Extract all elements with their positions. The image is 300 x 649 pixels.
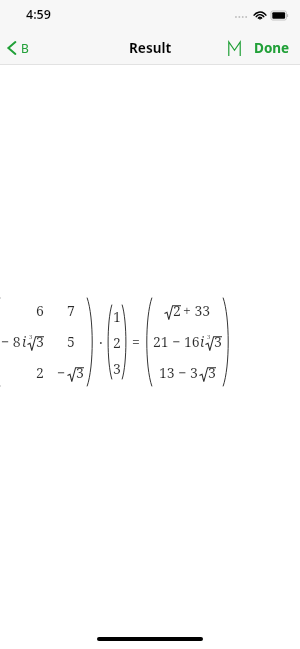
- staticText: 3: [208, 363, 216, 382]
- staticText: 3: [214, 332, 222, 351]
- staticText: 1: [113, 307, 121, 326]
- staticText: 3: [207, 333, 211, 341]
- staticText: + 33: [183, 301, 211, 320]
- button[interactable]: B: [6, 39, 29, 57]
- staticText: Result: [129, 39, 172, 57]
- staticText: 2: [36, 363, 44, 382]
- button[interactable]: 6: [0, 65, 300, 632]
- staticText: 7: [67, 301, 75, 320]
- staticText: i: [22, 332, 27, 351]
- staticText: Done: [254, 39, 290, 57]
- staticText: 5: [67, 332, 75, 351]
- staticText: 2: [173, 301, 181, 320]
- staticText: 6: [36, 301, 44, 320]
- staticText: 3: [76, 363, 84, 382]
- staticText: =: [132, 332, 140, 351]
- staticText: 3: [36, 332, 44, 351]
- button[interactable]: App logo: [222, 36, 246, 60]
- staticText: 21 − 16: [153, 332, 200, 351]
- staticText: 2: [113, 333, 121, 352]
- staticText: − 8: [1, 332, 21, 351]
- staticText: 4:59: [26, 6, 51, 23]
- staticText: ·: [99, 332, 103, 352]
- staticText: i: [200, 332, 205, 351]
- staticText: 13 − 3: [159, 363, 198, 382]
- staticText: −: [57, 363, 66, 382]
- staticText: 3: [113, 359, 121, 378]
- staticText: B: [21, 40, 29, 56]
- button[interactable]: Done: [254, 39, 290, 57]
- staticText: 3: [29, 333, 33, 341]
